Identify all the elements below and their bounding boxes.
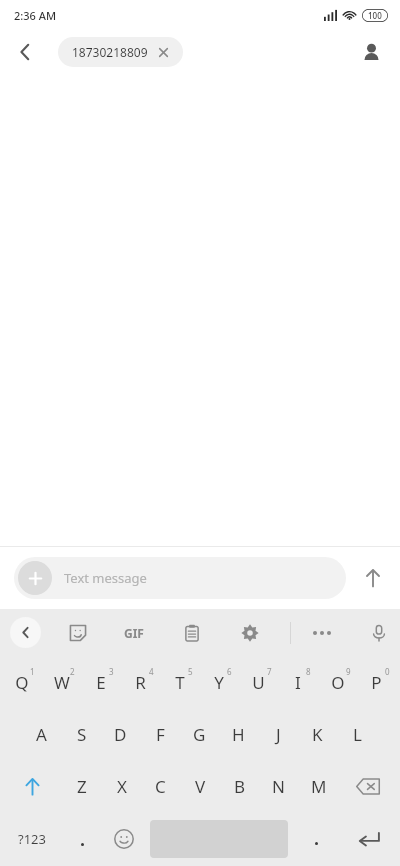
button[interactable]: C (141, 760, 180, 812)
button[interactable]: Emoji (102, 812, 146, 866)
staticText: X (117, 775, 127, 798)
staticText: 4 (149, 666, 154, 677)
button[interactable]: A (22, 708, 61, 760)
button[interactable]: Comma (62, 812, 102, 866)
staticText: 0 (385, 666, 390, 677)
button[interactable]: F (141, 708, 180, 760)
button[interactable]: Q (2, 656, 41, 708)
staticText: F (156, 723, 165, 746)
button[interactable]: Z (62, 760, 101, 812)
button[interactable]: T (160, 656, 199, 708)
button[interactable]: X (102, 760, 141, 812)
staticText: M (311, 775, 327, 798)
staticText: E (96, 671, 106, 694)
button[interactable]: Shift (10, 760, 54, 812)
button[interactable]: U (239, 656, 278, 708)
button[interactable]: P (357, 656, 396, 708)
staticText: 5 (188, 666, 193, 677)
staticText: 100 (368, 10, 382, 21)
staticText: 6 (227, 666, 232, 677)
button[interactable]: H (219, 708, 258, 760)
button[interactable]: I (278, 656, 317, 708)
staticText: Y (214, 671, 224, 694)
button[interactable]: Toolbar item (229, 612, 271, 654)
staticText: J (276, 723, 281, 746)
staticText: H (232, 723, 245, 746)
staticText: 8 (306, 666, 311, 677)
button[interactable]: S (62, 708, 101, 760)
button[interactable]: N (259, 760, 298, 812)
button[interactable]: D (101, 708, 140, 760)
button[interactable]: J (259, 708, 298, 760)
staticText: O (331, 671, 345, 694)
button[interactable]: R (121, 656, 160, 708)
staticText: U (252, 671, 265, 694)
button[interactable]: Toolbar item (113, 612, 155, 654)
button[interactable]: 18730218809 (58, 37, 183, 67)
button[interactable]: Toolbar item (171, 612, 213, 654)
button[interactable]: E (81, 656, 120, 708)
staticText: GIF (124, 625, 144, 641)
button[interactable]: B (220, 760, 259, 812)
staticText: D (114, 723, 127, 746)
staticText: A (36, 723, 47, 746)
staticText: B (234, 775, 246, 798)
staticText: R (135, 671, 146, 694)
staticText: Q (15, 671, 29, 694)
staticText: K (312, 723, 323, 746)
button[interactable]: M (299, 760, 338, 812)
button[interactable]: ?123 (6, 812, 58, 866)
staticText: 2:36 AM (14, 8, 57, 23)
button[interactable]: Toolbar item (57, 612, 99, 654)
button[interactable]: Toolbar item (301, 612, 343, 654)
staticText: V (195, 775, 206, 798)
button[interactable]: G (180, 708, 219, 760)
staticText: 1 (30, 666, 35, 677)
staticText: 7 (267, 666, 272, 677)
staticText: L (353, 723, 362, 746)
button[interactable]: Period (296, 812, 336, 866)
button[interactable]: Toolbar item (358, 612, 400, 654)
button[interactable]: L (338, 708, 377, 760)
button[interactable]: Back (6, 33, 44, 71)
staticText: G (193, 723, 206, 746)
button[interactable]: Backspace (344, 760, 392, 812)
button[interactable]: Enter (346, 812, 392, 866)
staticText: Z (77, 775, 87, 798)
button[interactable]: Collapse toolbar (10, 617, 41, 648)
staticText: S (77, 723, 87, 746)
staticText: Text message (64, 569, 147, 587)
staticText: 18730218809 (72, 44, 148, 60)
button[interactable]: Y (199, 656, 238, 708)
button[interactable]: W (42, 656, 81, 708)
button[interactable]: O (318, 656, 357, 708)
button[interactable]: V (181, 760, 220, 812)
staticText: W (54, 671, 70, 694)
button[interactable]: Add attachment (18, 561, 52, 595)
button[interactable]: Send (346, 554, 400, 602)
staticText: 3 (109, 666, 114, 677)
staticText: N (272, 775, 285, 798)
staticText: P (371, 671, 382, 694)
button[interactable]: Add attachment (14, 557, 346, 599)
staticText: ?123 (18, 830, 46, 848)
staticText: T (175, 671, 185, 694)
staticText: 9 (346, 666, 351, 677)
button[interactable]: Contact (352, 33, 390, 71)
staticText: 2 (70, 666, 75, 677)
button[interactable]: K (298, 708, 337, 760)
staticText: I (295, 671, 301, 694)
staticText: C (155, 775, 166, 798)
